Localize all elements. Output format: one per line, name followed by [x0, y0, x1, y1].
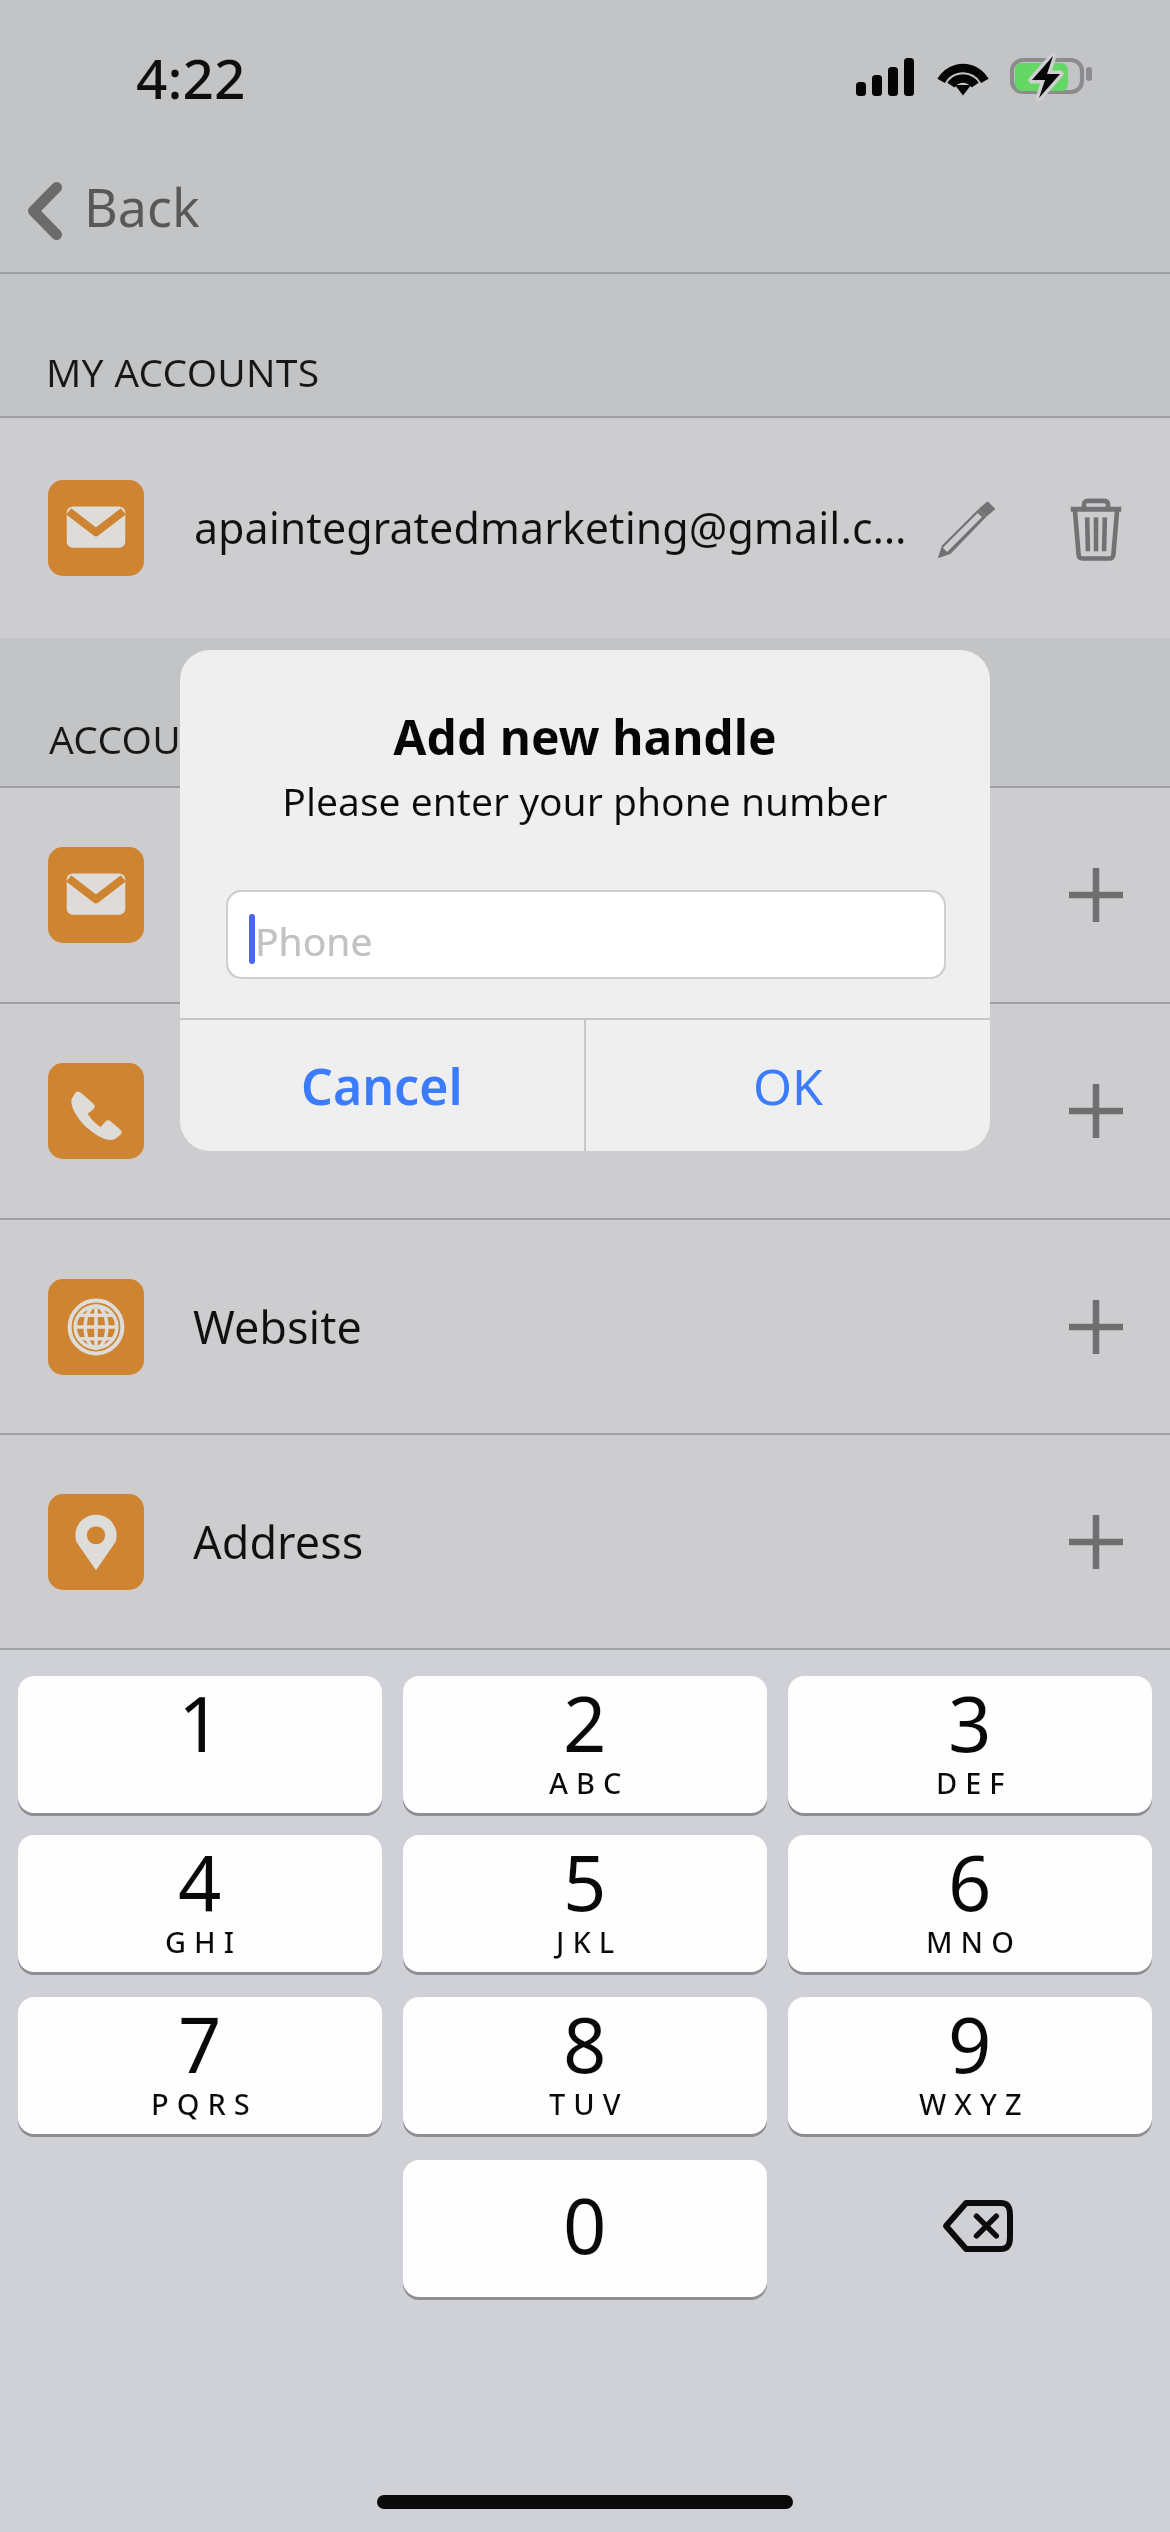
button[interactable] [0, 788, 1170, 1002]
staticText: Cancel [301, 1052, 463, 1120]
staticText: JKL [556, 1922, 623, 1961]
staticText: WXYZ [919, 2084, 1030, 2123]
button[interactable]: apaintegratedmarketing@gmail.c… [0, 418, 1170, 638]
button[interactable]: Address [0, 1435, 1170, 1649]
staticText: Add new handle [180, 704, 990, 769]
button[interactable]: OK [586, 1020, 990, 1151]
button[interactable]: 3 [788, 1676, 1152, 1813]
button[interactable]: Back [0, 0, 1170, 273]
staticText: Address [193, 1511, 364, 1572]
button[interactable]: 9 [788, 1997, 1152, 2134]
staticText: ABC [549, 1763, 630, 1802]
staticText: PQRS [151, 2084, 258, 2123]
staticText: Please enter your phone number [180, 774, 990, 827]
button[interactable]: 5 [403, 1835, 767, 1972]
button[interactable]: 6 [788, 1835, 1152, 1972]
button[interactable]: 2 [403, 1676, 767, 1813]
button[interactable]: 4 [18, 1835, 382, 1972]
button[interactable]: Add [1040, 1056, 1150, 1166]
button[interactable]: 7 [18, 1997, 382, 2134]
staticText: 8 [563, 1997, 607, 2096]
staticText: ACCOUNTS [49, 712, 255, 765]
staticText: OK [753, 1052, 823, 1120]
staticText: 7 [178, 1997, 222, 2096]
button[interactable]: Website [0, 1220, 1170, 1434]
button[interactable]: 8 [403, 1997, 767, 2134]
staticText: 2 [563, 1676, 607, 1775]
button[interactable]: 1 [18, 1676, 382, 1813]
button[interactable]: Add [1040, 840, 1150, 950]
staticText: Website [193, 1296, 362, 1357]
staticText: 4:22 [136, 40, 246, 115]
staticText: Back [84, 171, 200, 242]
staticText: 1 [178, 1676, 222, 1775]
staticText: 9 [948, 1997, 992, 2096]
staticText: 3 [948, 1676, 992, 1775]
staticText: Phone [255, 914, 373, 967]
button[interactable]: Delete [1048, 482, 1144, 578]
staticText: 6 [948, 1835, 992, 1934]
button[interactable]: Cancel [180, 1020, 584, 1151]
staticText: MY ACCOUNTS [46, 345, 320, 398]
button[interactable]: Backspace [788, 2160, 1152, 2297]
button[interactable]: Add Website [1040, 1272, 1150, 1382]
staticText: GHI [165, 1922, 243, 1961]
button[interactable]: Phone [228, 892, 944, 977]
button[interactable]: 0 [403, 2160, 767, 2297]
staticText: 4 [178, 1835, 222, 1934]
staticText: 5 [563, 1835, 607, 1934]
staticText: apaintegratedmarketing@gmail.c… [194, 498, 907, 557]
staticText: TUV [549, 2084, 629, 2123]
button[interactable]: Add Address [1040, 1487, 1150, 1597]
staticText: 0 [563, 2173, 607, 2277]
staticText: DEF [936, 1763, 1013, 1802]
staticText: MNO [926, 1922, 1022, 1961]
button[interactable] [0, 1004, 1170, 1218]
button[interactable]: Edit [918, 482, 1014, 578]
